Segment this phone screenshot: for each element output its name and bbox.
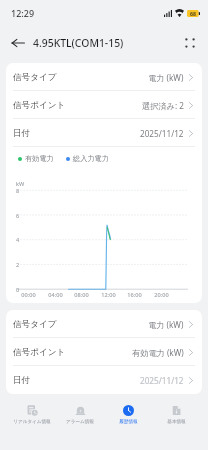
staticText: 20:00 (154, 291, 169, 299)
staticText: 4 (16, 236, 20, 244)
button[interactable]: 日付 (6, 366, 202, 394)
staticText: 0 (16, 286, 20, 294)
staticText: 日付 (13, 375, 31, 386)
staticText: 4.95KTL(COM1-15) (33, 36, 124, 50)
button[interactable]: 信号ポイント (6, 91, 202, 119)
staticText: 12:00 (101, 291, 116, 299)
staticText: 2025/11/12 (140, 128, 184, 139)
staticText: 日付 (13, 128, 31, 139)
button[interactable]: 日付 (6, 119, 202, 147)
staticText: 68 (190, 10, 196, 17)
staticText: 6 (16, 212, 20, 220)
button[interactable]: リアルタイム情報 (8, 398, 56, 425)
staticText: 信号ポイント (13, 100, 66, 111)
button[interactable]: 基本情報 (152, 398, 200, 425)
staticText: リアルタイム情報 (13, 419, 51, 425)
staticText: 8 (16, 187, 20, 195)
staticText: 00:00 (21, 291, 36, 299)
staticText: 総入力電力 (73, 154, 109, 163)
staticText: 基本情報 (167, 419, 186, 425)
staticText: 電力 (kW) (148, 319, 184, 330)
button[interactable]: More options (179, 32, 201, 54)
staticText: 選択済み: 2 (142, 100, 184, 111)
button[interactable]: アラーム情報 (56, 398, 104, 425)
staticText: 電力 (kW) (148, 72, 184, 83)
staticText: 16:00 (127, 291, 142, 299)
button[interactable]: 信号タイプ (6, 310, 202, 338)
staticText: 2025/11/12 (140, 375, 184, 386)
staticText: 履歴情報 (119, 419, 138, 425)
button[interactable]: 信号タイプ (6, 63, 202, 91)
staticText: kW (16, 180, 25, 188)
button[interactable]: 履歴情報 (104, 398, 152, 425)
staticText: 04:00 (48, 291, 63, 299)
staticText: 信号ポイント (13, 347, 66, 358)
staticText: 08:00 (74, 291, 89, 299)
staticText: 有効電力 (kW) (132, 347, 184, 358)
staticText: 12:29 (11, 7, 35, 19)
staticText: 信号タイプ (13, 72, 57, 83)
staticText: 有効電力 (25, 154, 54, 163)
button[interactable]: Back (5, 30, 31, 56)
staticText: 2 (16, 261, 20, 269)
button[interactable]: 信号ポイント (6, 338, 202, 366)
staticText: アラーム情報 (66, 419, 94, 425)
staticText: 信号タイプ (13, 319, 57, 330)
